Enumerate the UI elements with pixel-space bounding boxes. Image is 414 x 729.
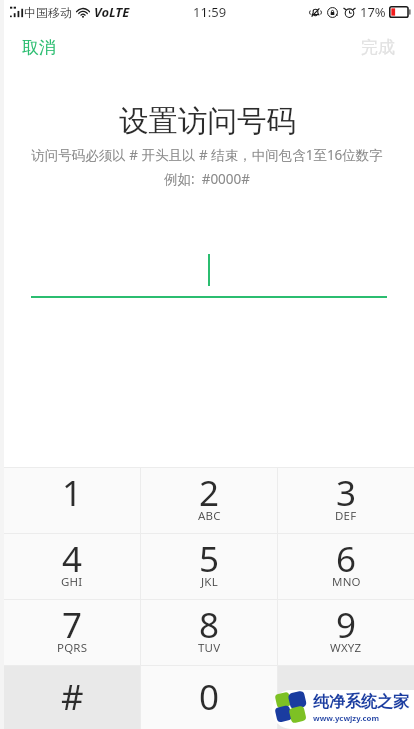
staticText: TUV <box>198 640 221 656</box>
staticText: www.ycwjzy.com <box>313 713 380 724</box>
staticText: VoLTE <box>94 3 130 21</box>
staticText: PQRS <box>57 640 88 656</box>
button[interactable]: Delete <box>278 666 414 729</box>
staticText: 纯净系统之家 <box>313 692 409 712</box>
staticText: 9 <box>336 601 357 649</box>
button[interactable]: 3 <box>278 468 414 533</box>
staticText: 5 <box>199 535 220 583</box>
staticText: 6 <box>336 535 357 583</box>
staticText: 11:59 <box>193 3 227 21</box>
button[interactable]: 5 <box>141 534 277 599</box>
button[interactable]: 完成 <box>341 23 414 67</box>
staticText: 7 <box>62 601 83 649</box>
staticText: 3 <box>336 469 357 517</box>
button[interactable]: 2 <box>141 468 277 533</box>
staticText: JKL <box>201 574 218 590</box>
button[interactable]: 4 <box>4 534 140 599</box>
staticText: 例如: #0000# <box>0 170 414 188</box>
button[interactable]: 6 <box>278 534 414 599</box>
staticText: 设置访问号码 <box>119 103 296 135</box>
staticText: 完成 <box>361 37 395 58</box>
staticText: 取消 <box>22 37 56 58</box>
staticText: 2 <box>199 469 220 517</box>
staticText: 中国移动 <box>24 5 72 20</box>
staticText: 8 <box>199 601 220 649</box>
staticText: 17% <box>360 3 386 21</box>
button[interactable]: 1 <box>4 468 140 533</box>
button[interactable]: Access number input field <box>31 252 387 298</box>
staticText: ABC <box>198 508 221 524</box>
staticText: GHI <box>61 574 83 590</box>
staticText: 4 <box>62 535 83 583</box>
staticText: 1 <box>62 469 83 517</box>
button[interactable]: # <box>4 666 140 729</box>
button[interactable]: 8 <box>141 600 277 665</box>
staticText: 访问号码必须以 # 开头且以 # 结束，中间包含1至16位数字 <box>0 146 414 164</box>
staticText: WXYZ <box>330 640 362 656</box>
staticText: 0 <box>199 673 220 721</box>
staticText: MNO <box>332 574 361 590</box>
button[interactable]: 7 <box>4 600 140 665</box>
button[interactable]: 0 <box>141 666 277 729</box>
button[interactable]: 9 <box>278 600 414 665</box>
button[interactable]: 取消 <box>0 23 78 67</box>
staticText: # <box>61 673 84 721</box>
staticText: DEF <box>335 508 357 524</box>
